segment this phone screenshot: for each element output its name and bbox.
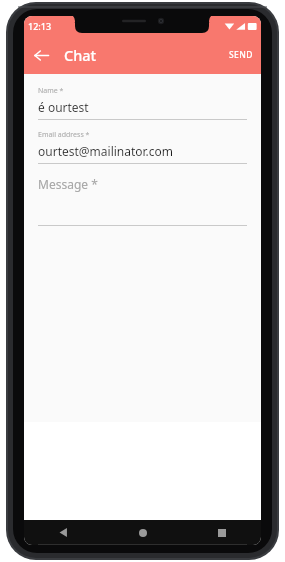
button[interactable]: Back xyxy=(24,38,58,72)
button[interactable]: Message * xyxy=(38,176,247,226)
staticText: Message * xyxy=(38,176,98,192)
button[interactable]: Back xyxy=(24,520,103,545)
staticText: ourtest@mailinator.com xyxy=(38,143,174,159)
staticText: Email address * xyxy=(38,130,90,140)
button[interactable]: Email address * xyxy=(38,130,247,164)
button[interactable]: Home xyxy=(103,520,182,545)
staticText: 12:13 xyxy=(28,20,52,32)
staticText: é ourtest xyxy=(38,99,89,115)
staticText: Name * xyxy=(38,86,64,96)
staticText: Chat xyxy=(64,45,97,65)
button[interactable]: SEND xyxy=(221,36,261,74)
staticText: SEND xyxy=(229,49,253,61)
button[interactable]: Recent apps xyxy=(182,520,261,545)
button[interactable]: Name * xyxy=(38,86,247,120)
